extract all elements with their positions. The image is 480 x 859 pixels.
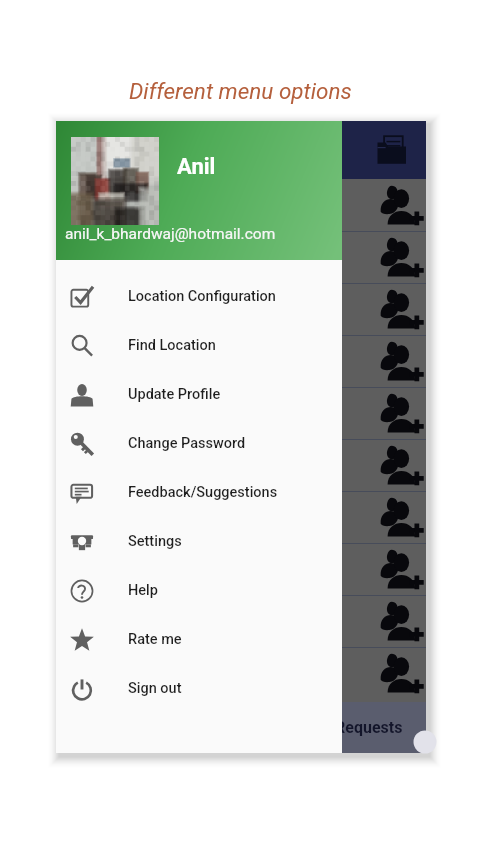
button[interactable] [56, 595, 426, 647]
button[interactable]: Help [56, 566, 342, 615]
staticText: Requests [335, 718, 403, 737]
button[interactable] [56, 387, 426, 439]
button[interactable] [56, 647, 426, 699]
button[interactable] [56, 335, 426, 387]
staticText: Find Location [128, 337, 216, 354]
button[interactable] [56, 491, 426, 543]
button[interactable]: Update Profile [56, 370, 342, 419]
staticText: Different menu options [129, 78, 352, 104]
staticText: Location Configuration [128, 288, 276, 305]
staticText: Rate me [128, 631, 182, 648]
button[interactable] [56, 439, 426, 491]
staticText: anil_k_bhardwaj@hotmail.com [65, 225, 276, 243]
staticText: Feedback/Suggestions [128, 484, 278, 501]
staticText: Sign out [128, 680, 182, 697]
button[interactable]: Feedback/Suggestions [56, 468, 342, 517]
button[interactable] [56, 231, 426, 283]
button[interactable]: Sign out [56, 664, 342, 713]
button[interactable]: Change Password [56, 419, 342, 468]
button[interactable]: Requests [56, 702, 426, 753]
button[interactable] [56, 543, 426, 595]
button[interactable]: Find Location [56, 321, 342, 370]
staticText: Help [128, 582, 158, 599]
button[interactable] [56, 283, 426, 335]
staticText: Anil [177, 154, 216, 180]
button[interactable]: Settings [56, 517, 342, 566]
staticText: Update Profile [128, 386, 221, 403]
staticText: Settings [128, 533, 182, 550]
button[interactable]: Folders [368, 127, 414, 173]
staticText: Change Password [128, 435, 246, 452]
button[interactable]: Rate me [56, 615, 342, 664]
button[interactable] [56, 179, 426, 231]
button[interactable]: Location Configuration [56, 272, 342, 321]
